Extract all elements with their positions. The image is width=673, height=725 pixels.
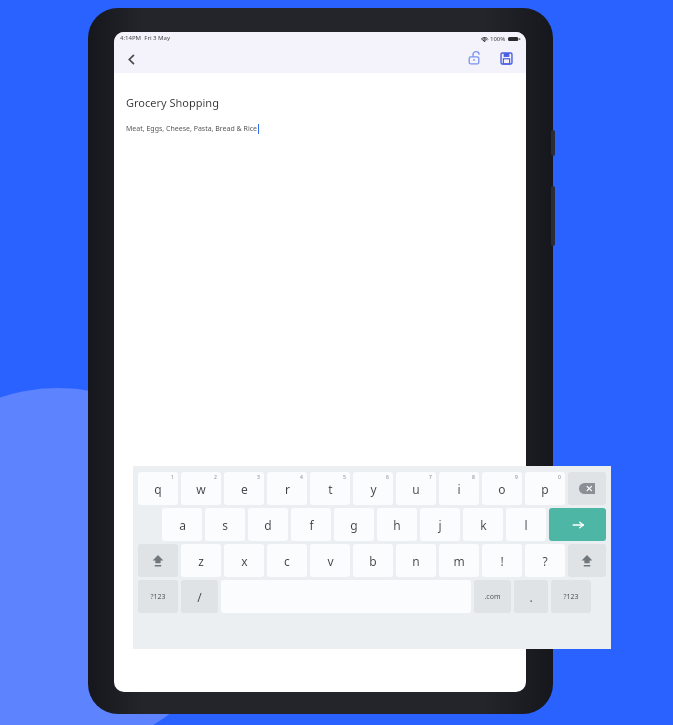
button[interactable]: l (506, 508, 546, 541)
staticText: .com (484, 592, 501, 602)
staticText: 0 (558, 474, 561, 481)
staticText: e (241, 481, 248, 497)
staticText: 1 (171, 474, 174, 481)
button[interactable]: ! (482, 544, 522, 577)
staticText: 5 (343, 474, 346, 481)
staticText: f (309, 517, 314, 533)
button[interactable]: y (353, 472, 393, 505)
button[interactable]: e (224, 472, 264, 505)
button[interactable]: c (267, 544, 307, 577)
button[interactable]: r (267, 472, 307, 505)
button[interactable]: m (439, 544, 479, 577)
button[interactable]: n (396, 544, 436, 577)
staticText: x (241, 553, 248, 569)
staticText: k (480, 517, 487, 533)
button[interactable]: Back (118, 46, 144, 72)
staticText: m (453, 553, 465, 569)
staticText: ! (500, 553, 504, 569)
button[interactable]: v (310, 544, 350, 577)
button[interactable]: j (420, 508, 460, 541)
button[interactable]: o (482, 472, 522, 505)
button[interactable]: Unlock note (461, 45, 487, 71)
staticText: g (350, 517, 358, 533)
button[interactable]: w (181, 472, 221, 505)
button[interactable]: x (224, 544, 264, 577)
staticText: h (393, 517, 401, 533)
button[interactable]: b (353, 544, 393, 577)
staticText: Meat, Eggs, Cheese, Pasta, Bread & Rice (126, 124, 258, 134)
button[interactable]: s (205, 508, 245, 541)
staticText: ?123 (563, 592, 579, 602)
staticText: i (457, 481, 461, 497)
button[interactable]: Shift (568, 544, 606, 577)
button[interactable]: i (439, 472, 479, 505)
staticText: . (529, 589, 533, 605)
button[interactable]: p (525, 472, 565, 505)
button[interactable]: d (248, 508, 288, 541)
button[interactable]: .com (474, 580, 511, 613)
button[interactable]: z (181, 544, 221, 577)
staticText: 3 (257, 474, 260, 481)
button[interactable]: u (396, 472, 436, 505)
staticText: 100% (490, 35, 506, 43)
staticText: d (264, 517, 272, 533)
staticText: v (327, 553, 334, 569)
button[interactable]: ? (525, 544, 565, 577)
staticText: 4:14PM Fri 3 May (120, 34, 171, 42)
staticText: Grocery Shopping (126, 95, 219, 110)
staticText: 6 (386, 474, 389, 481)
button[interactable]: . (514, 580, 548, 613)
staticText: z (198, 553, 204, 569)
button[interactable]: f (291, 508, 331, 541)
staticText: 2 (214, 474, 217, 481)
staticText: s (222, 517, 228, 533)
button[interactable]: a (162, 508, 202, 541)
staticText: w (196, 481, 206, 497)
button[interactable]: g (334, 508, 374, 541)
staticText: ?123 (150, 592, 166, 602)
staticText: ? (542, 553, 548, 569)
button[interactable]: Backspace (568, 472, 606, 505)
staticText: j (438, 517, 442, 533)
staticText: t (328, 481, 333, 497)
staticText: y (370, 481, 377, 497)
staticText: q (154, 481, 162, 497)
button[interactable]: ?123 (551, 580, 591, 613)
button[interactable]: Save (493, 45, 519, 71)
button[interactable]: Enter (549, 508, 606, 541)
button[interactable]: t (310, 472, 350, 505)
staticText: 8 (472, 474, 475, 481)
staticText: n (412, 553, 420, 569)
staticText: l (524, 517, 528, 533)
staticText: u (412, 481, 420, 497)
staticText: 9 (515, 474, 518, 481)
button[interactable]: Shift (138, 544, 178, 577)
button[interactable]: q (138, 472, 178, 505)
staticText: o (498, 481, 506, 497)
staticText: 4 (300, 474, 303, 481)
button[interactable]: k (463, 508, 503, 541)
staticText: 7 (429, 474, 432, 481)
staticText: b (369, 553, 377, 569)
staticText: r (285, 481, 290, 497)
button[interactable]: ?123 (138, 580, 178, 613)
staticText: c (284, 553, 290, 569)
staticText: / (197, 589, 202, 605)
button[interactable]: / (181, 580, 218, 613)
staticText: a (179, 517, 186, 533)
button[interactable]: h (377, 508, 417, 541)
staticText: p (541, 481, 549, 497)
